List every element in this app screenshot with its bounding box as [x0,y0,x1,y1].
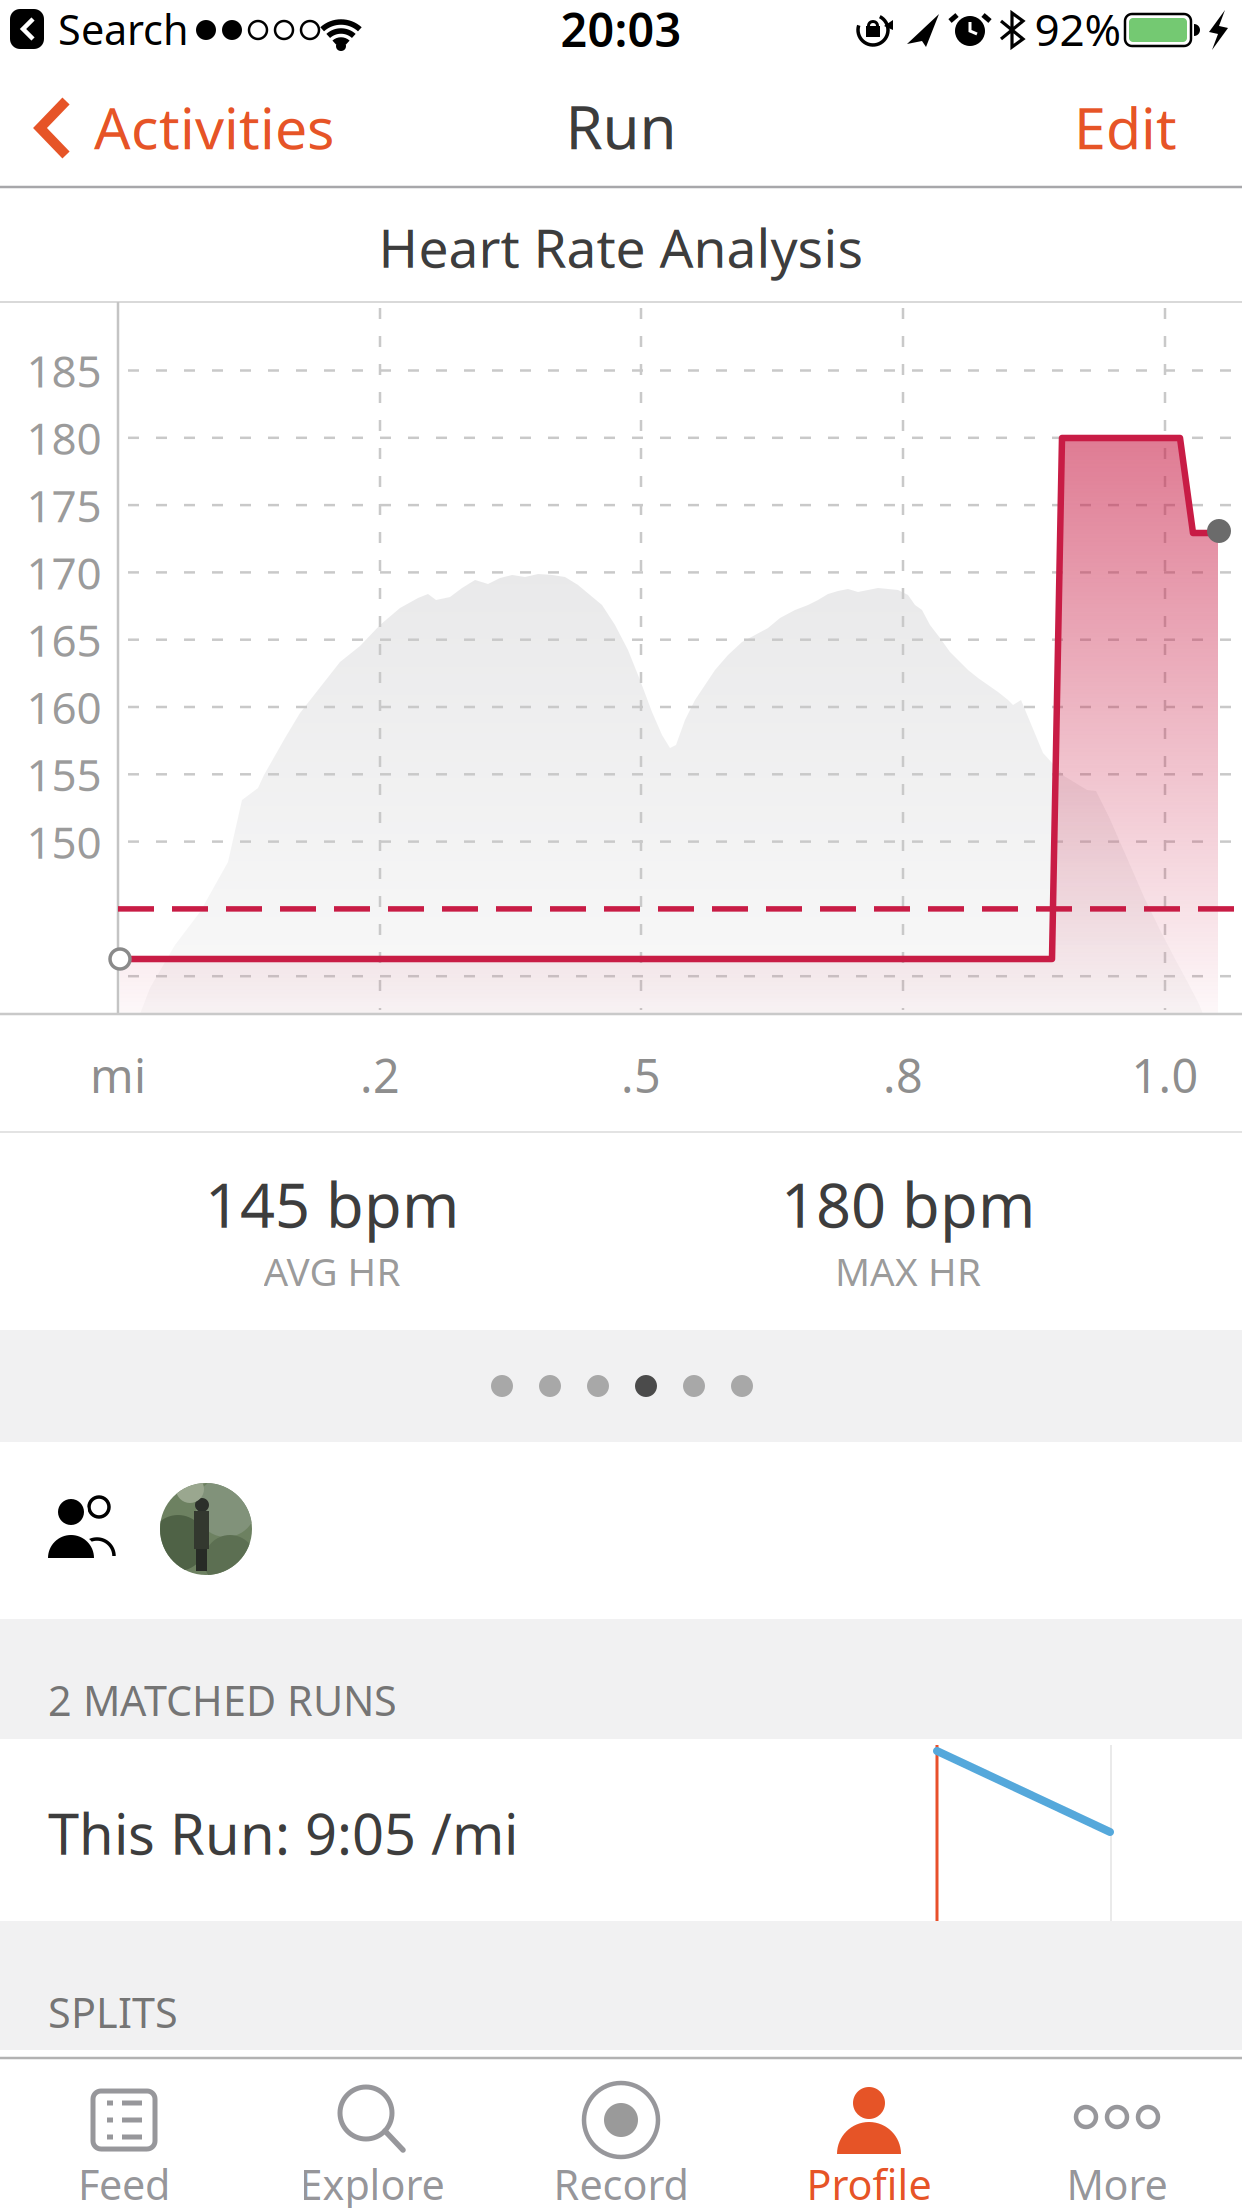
staticText: 180 bpm [781,1163,1035,1245]
staticText: 145 bpm [205,1163,459,1245]
staticText: 175 [26,476,101,534]
staticText: Edit [1074,89,1177,165]
staticText: 185 [26,341,101,400]
staticText: 1.0 [1131,1044,1198,1106]
staticText: 92% [1034,0,1121,58]
staticText: 180 [26,409,101,467]
staticText: 160 [26,678,101,736]
staticText: mi [90,1044,146,1106]
staticText: 20:03 [560,0,681,60]
staticText: Profile [806,2157,931,2208]
staticText: 155 [26,745,101,803]
staticText: More [1066,2157,1167,2208]
staticText: Heart Rate Analysis [378,212,863,282]
staticText: Record [553,2157,688,2208]
staticText: .5 [621,1044,661,1106]
staticText: 150 [26,812,101,871]
staticText: 165 [26,610,101,669]
staticText: This Run: 9:05 /mi [48,1796,518,1870]
staticText: Activities [94,89,334,165]
staticText: AVG HR [263,1245,400,1297]
staticText: Search [58,2,189,56]
staticText: MAX HR [835,1245,981,1297]
staticText: Run [565,86,676,166]
staticText: .8 [883,1044,923,1106]
staticText: .2 [360,1044,400,1106]
staticText: 2 MATCHED RUNS [48,1673,397,1727]
staticText: Feed [78,2157,170,2208]
staticText: Explore [299,2157,444,2208]
staticText: 170 [26,543,101,602]
staticText: SPLITS [48,1985,178,2039]
